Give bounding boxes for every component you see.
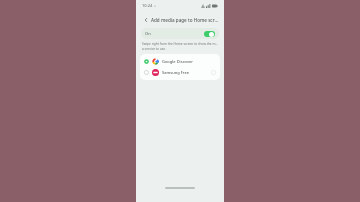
button[interactable]: Samsung Free [140, 67, 220, 78]
staticText: On [145, 31, 151, 37]
staticText: Google Discover [162, 59, 194, 64]
staticText: 10:24 [142, 3, 153, 8]
button[interactable]: Google Discover [140, 56, 220, 67]
staticText: Add media page to Home screen [151, 17, 219, 23]
staticText: Swipe right from the Home screen to show… [142, 42, 218, 46]
button[interactable]: More info [211, 70, 216, 75]
button[interactable]: On [141, 28, 219, 39]
staticText: a service to use. [142, 47, 166, 51]
button[interactable]: Back [141, 15, 150, 24]
staticText: Samsung Free [162, 70, 190, 75]
